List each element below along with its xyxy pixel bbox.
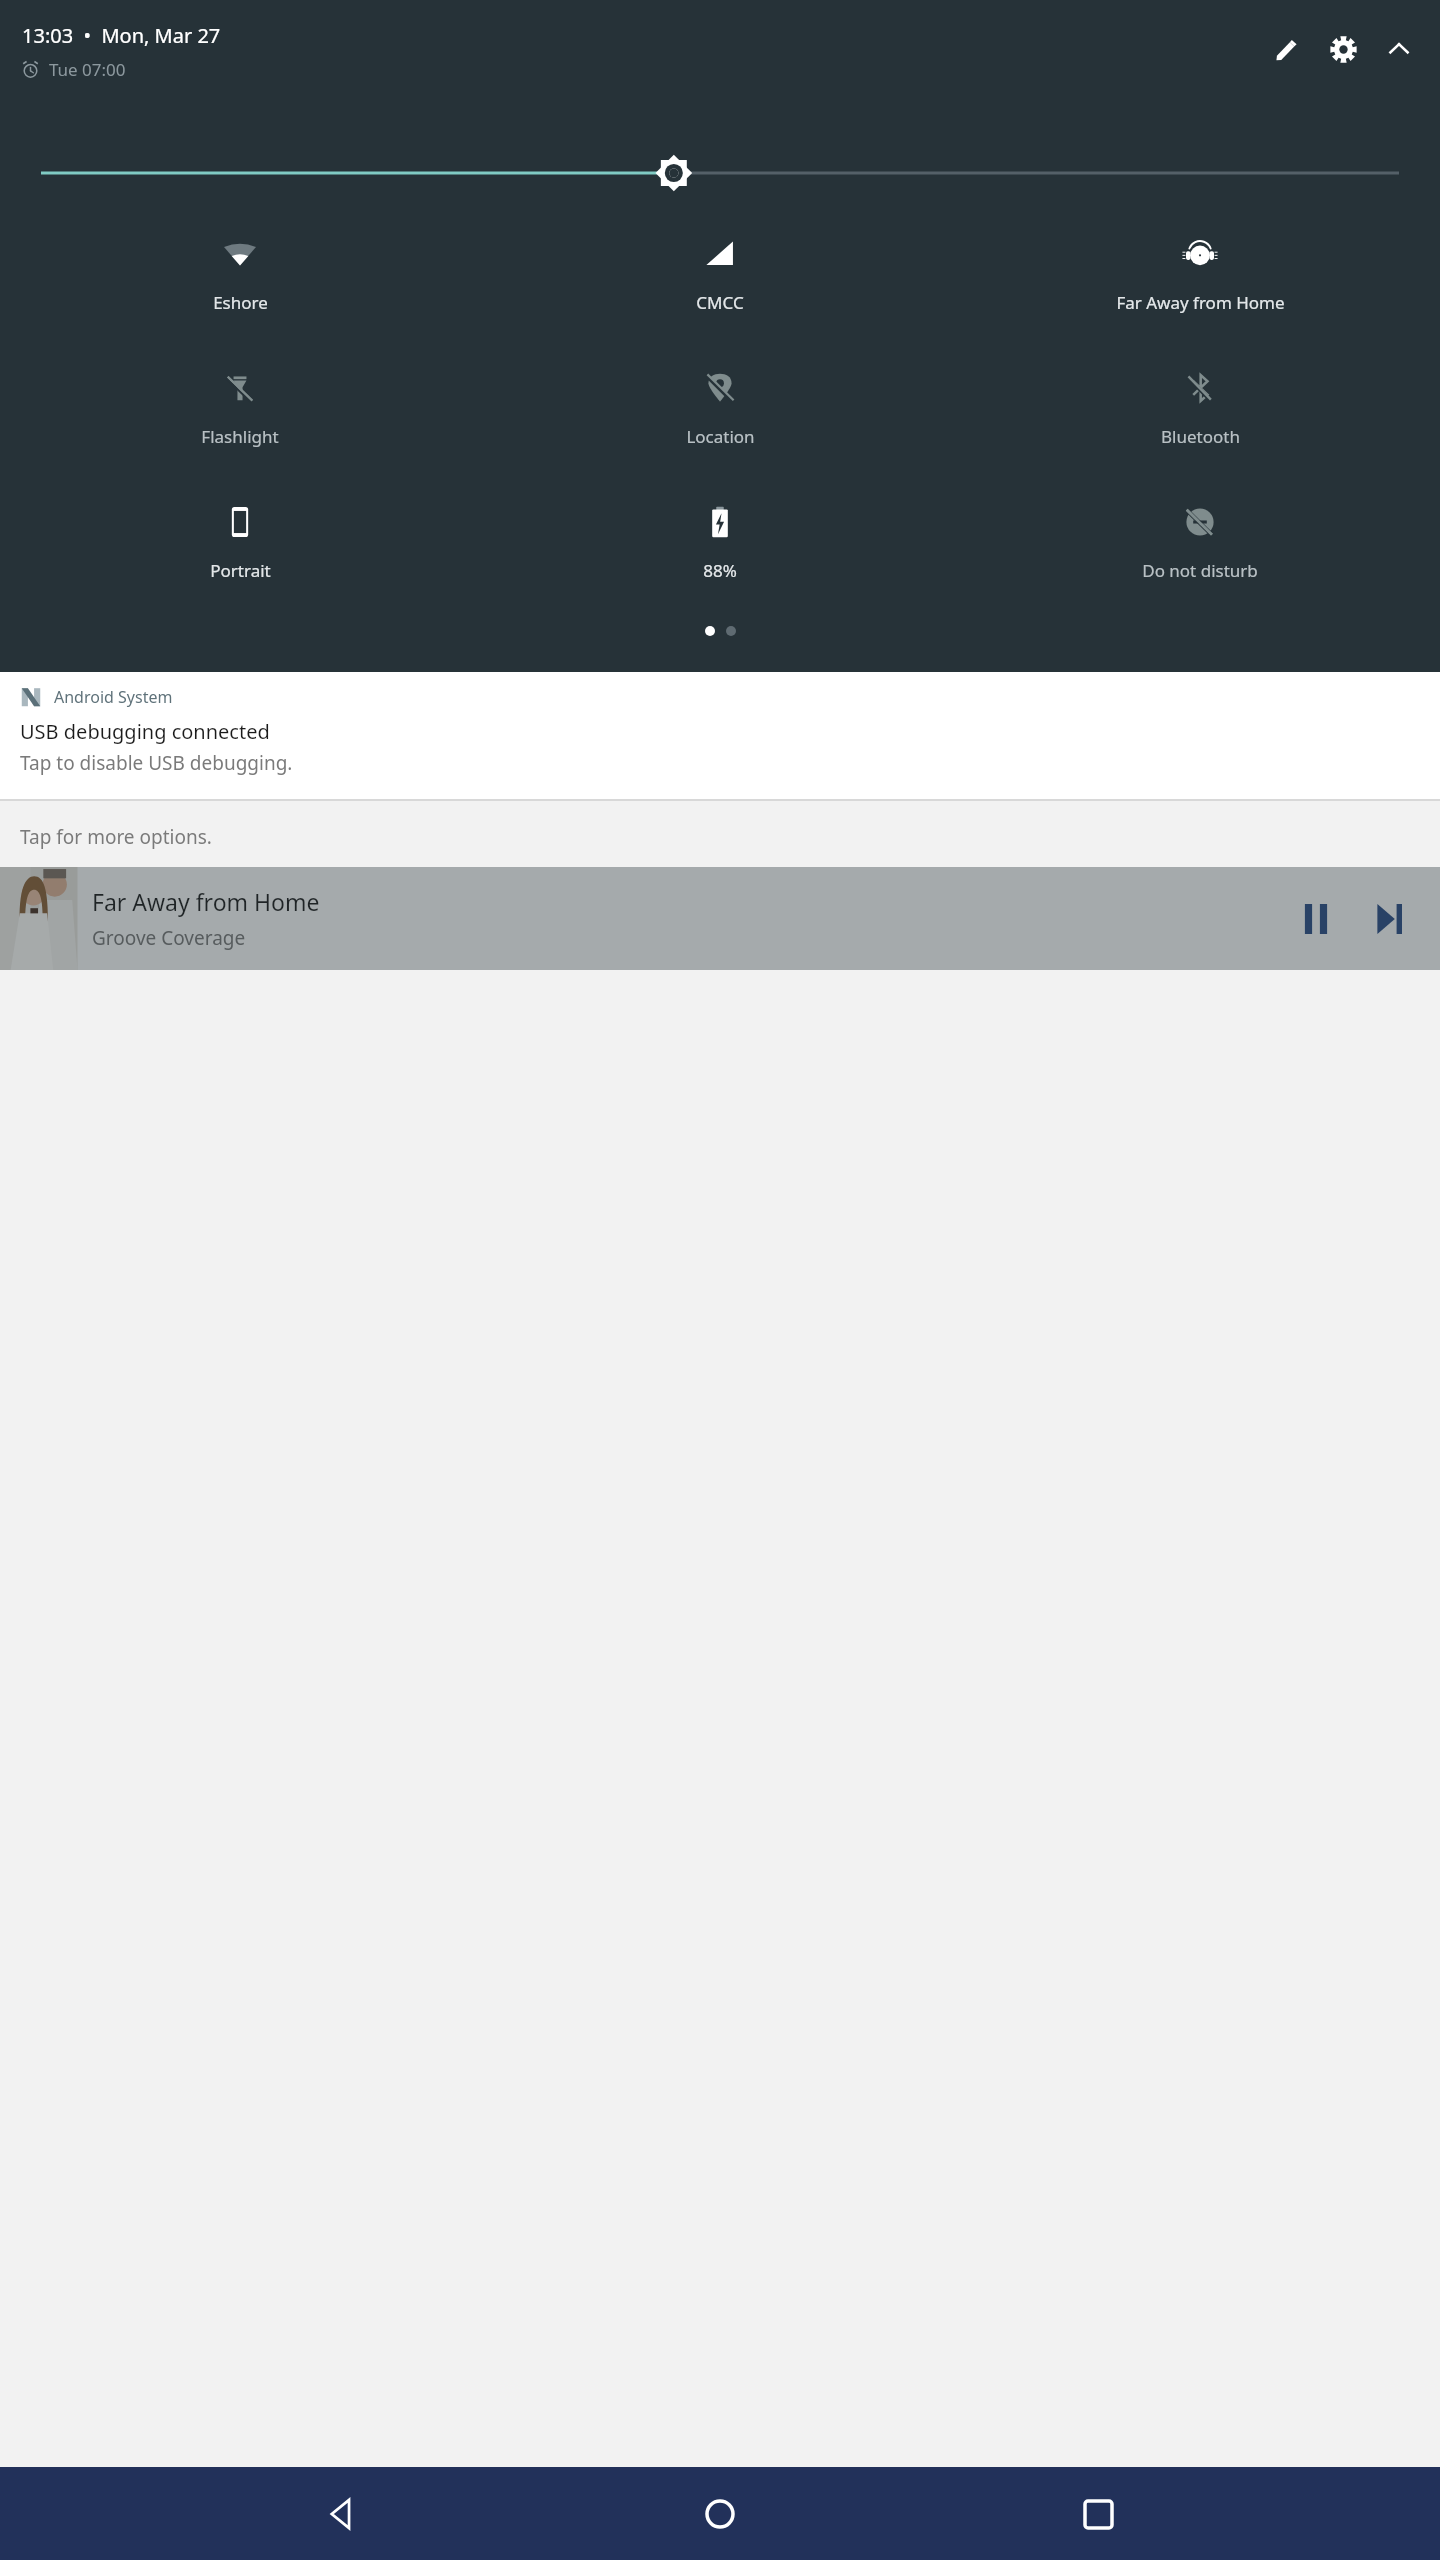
- button[interactable]: Pause: [1284, 887, 1348, 951]
- button[interactable]: Flashlight: [0, 367, 480, 452]
- staticText: Bluetooth: [1161, 425, 1240, 448]
- staticText: Android System: [54, 686, 173, 708]
- staticText: Groove Coverage: [92, 925, 246, 951]
- staticText: Eshore: [213, 291, 268, 314]
- button[interactable]: Far Away from Home: [0, 867, 1440, 970]
- button[interactable]: Portrait: [0, 501, 480, 586]
- button[interactable]: Settings: [1320, 26, 1366, 72]
- staticText: USB debugging connected: [20, 718, 270, 745]
- staticText: Do not disturb: [1142, 559, 1258, 582]
- button[interactable]: Next track: [1358, 887, 1422, 951]
- button[interactable]: Edit: [1264, 26, 1310, 72]
- staticText: Portrait: [210, 559, 271, 582]
- staticText: CMCC: [696, 291, 744, 314]
- button[interactable]: Back: [306, 2478, 378, 2550]
- button[interactable]: Do not disturb: [960, 501, 1440, 586]
- button[interactable]: Collapse: [1376, 26, 1422, 72]
- staticText: Tue 07:00: [49, 58, 126, 81]
- button[interactable]: Home: [684, 2478, 756, 2550]
- button[interactable]: Android System: [0, 672, 1440, 799]
- button[interactable]: Far Away from Home: [960, 233, 1440, 318]
- button[interactable]: Brightness: [0, 143, 1440, 203]
- staticText: Flashlight: [201, 425, 279, 448]
- button[interactable]: 88%: [480, 501, 960, 586]
- staticText: Far Away from Home: [92, 886, 320, 917]
- staticText: Tap for more options.: [20, 824, 212, 850]
- staticText: Far Away from Home: [1116, 291, 1285, 314]
- staticText: Tap to disable USB debugging.: [20, 750, 293, 776]
- button[interactable]: Location: [480, 367, 960, 452]
- button[interactable]: Recent apps: [1062, 2478, 1134, 2550]
- button[interactable]: CMCC: [480, 233, 960, 318]
- button[interactable]: Eshore: [0, 233, 480, 318]
- staticText: 13:03 • Mon, Mar 27: [22, 22, 221, 49]
- staticText: Location: [686, 425, 755, 448]
- staticText: 88%: [703, 559, 737, 582]
- button[interactable]: USB charging this device: [0, 799, 1440, 867]
- button[interactable]: Bluetooth: [960, 367, 1440, 452]
